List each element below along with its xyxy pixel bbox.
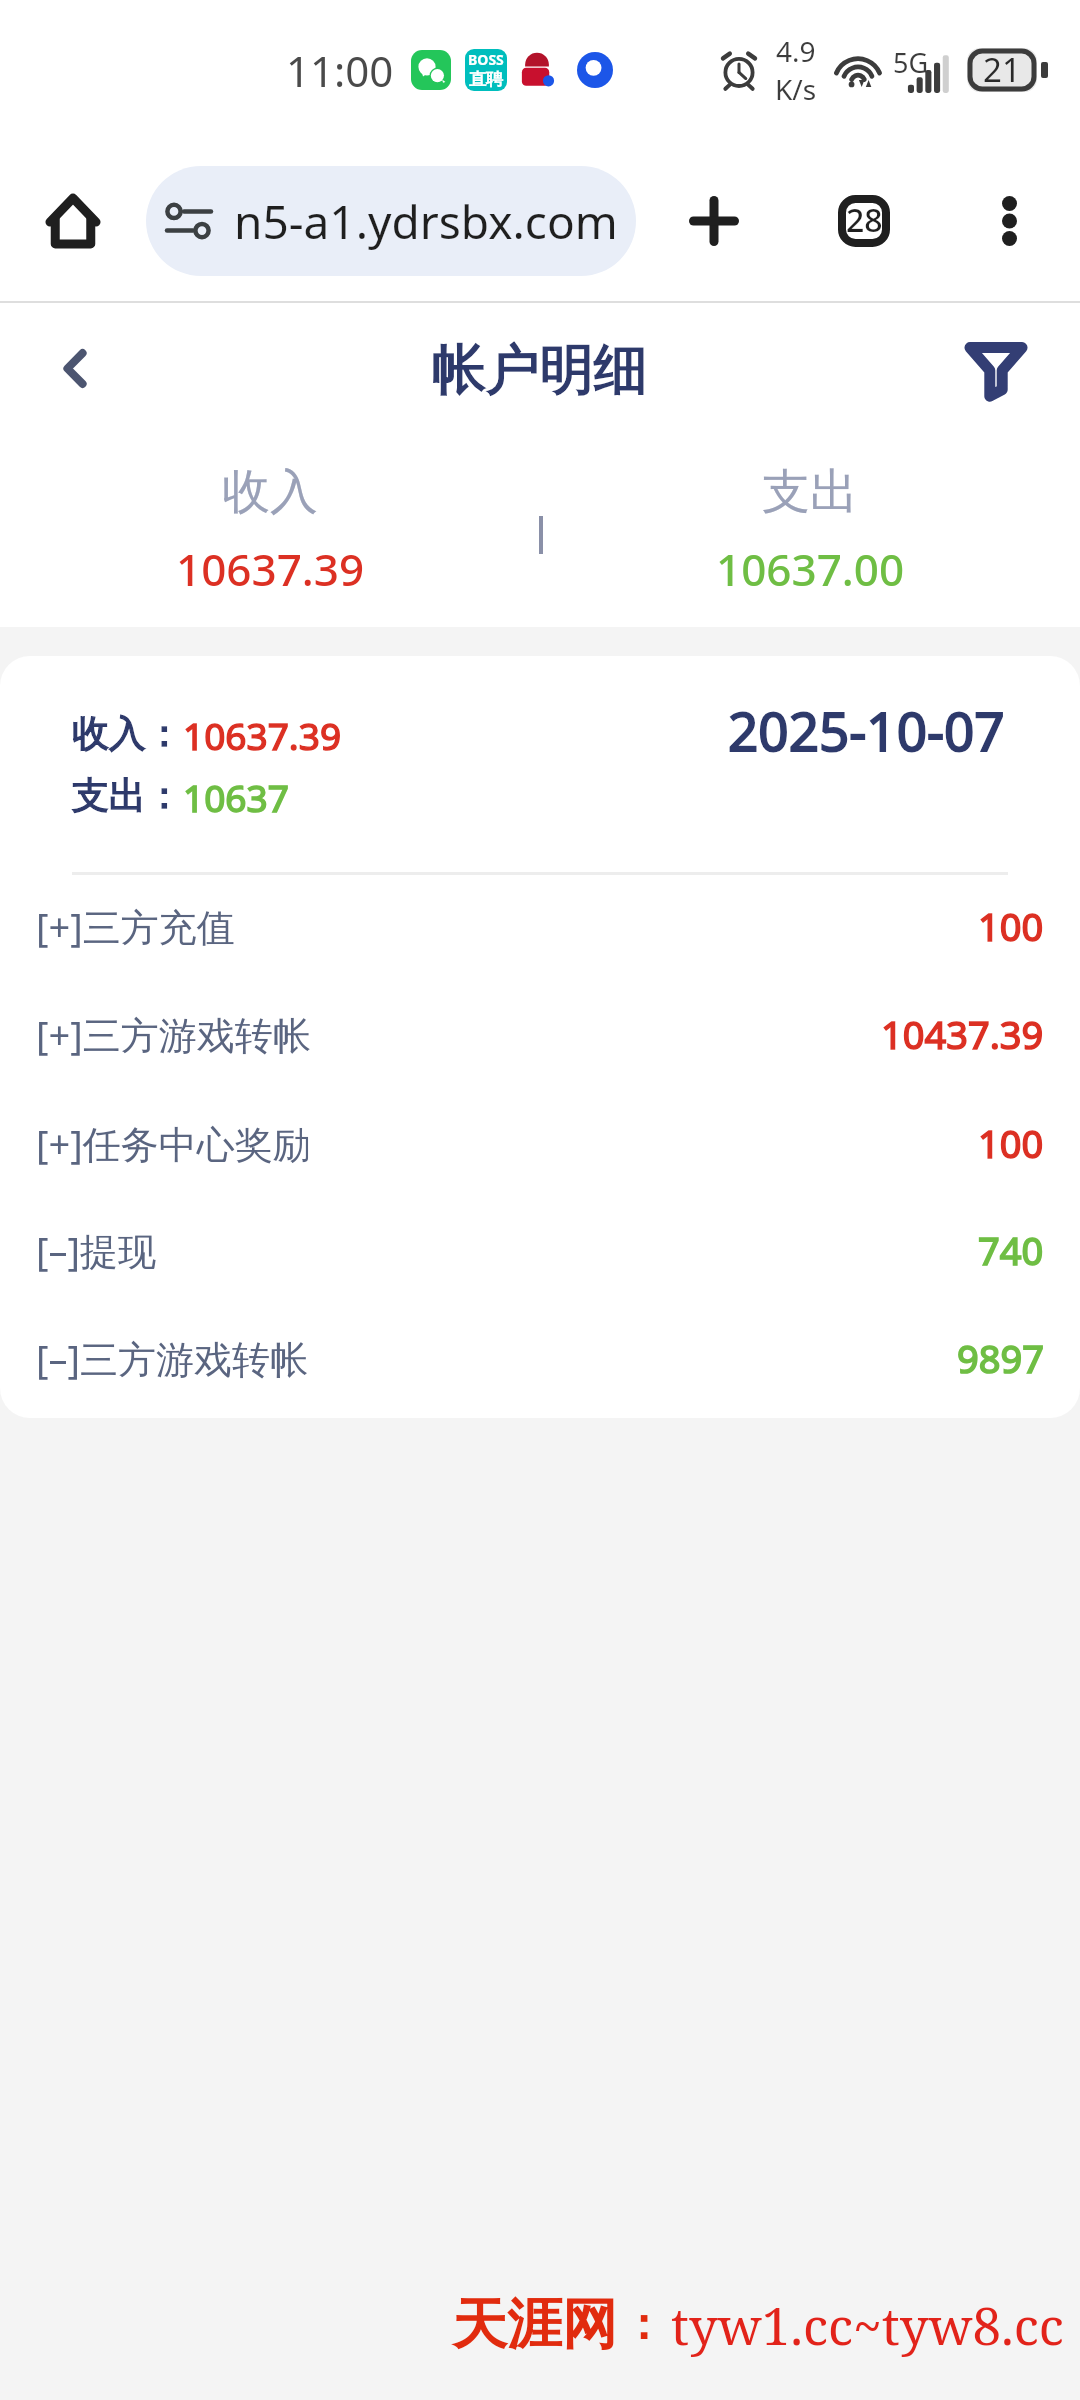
staticText: [+]任务中心奖励 bbox=[36, 1117, 311, 1169]
staticText: 9897 bbox=[957, 1332, 1044, 1384]
staticText: 100 bbox=[978, 1117, 1044, 1169]
staticText: 2025-10-07 bbox=[728, 694, 1005, 766]
button[interactable]: [+]三方游戏转帐 bbox=[0, 980, 1080, 1088]
button[interactable]: Home bbox=[30, 178, 116, 264]
staticText: 帐户明细 bbox=[432, 336, 648, 404]
button[interactable]: 支出 bbox=[540, 432, 1080, 627]
staticText: 帐户明细 bbox=[432, 336, 648, 404]
staticText: 11:00 bbox=[286, 42, 394, 99]
staticText: 10637 bbox=[183, 772, 289, 822]
button[interactable]: [+]任务中心奖励 bbox=[0, 1089, 1080, 1197]
staticText: ： bbox=[621, 2297, 665, 2352]
staticText: [–]三方游戏转帐 bbox=[36, 1332, 309, 1384]
staticText: 100 bbox=[978, 900, 1044, 952]
staticText: K/s bbox=[775, 70, 817, 108]
staticText: 天涯网 bbox=[452, 2290, 617, 2359]
button[interactable]: [–]三方游戏转帐 bbox=[0, 1304, 1080, 1412]
staticText: 收入 bbox=[222, 462, 318, 522]
staticText: 4.9 bbox=[776, 32, 816, 70]
staticText: 支出： bbox=[72, 772, 183, 819]
staticText: BOSS bbox=[468, 50, 504, 69]
staticText: 收入： bbox=[72, 710, 183, 757]
button[interactable]: Tabs bbox=[818, 175, 910, 267]
staticText: 740 bbox=[978, 1224, 1044, 1276]
staticText: 收入： bbox=[72, 710, 183, 757]
button[interactable]: More options bbox=[963, 175, 1055, 267]
staticText: 支出 bbox=[762, 462, 858, 522]
staticText: 100 bbox=[978, 900, 1044, 952]
staticText: 10637.39 bbox=[183, 710, 342, 760]
staticText: 9897 bbox=[957, 1332, 1044, 1384]
button[interactable]: n5-a1.ydrsbx.com bbox=[146, 166, 636, 276]
staticText: 21 bbox=[983, 47, 1021, 91]
staticText: 100 bbox=[978, 1117, 1044, 1169]
button[interactable]: 收入 bbox=[0, 432, 540, 627]
staticText: n5-a1.ydrsbx.com bbox=[234, 190, 618, 253]
button[interactable]: [–]提现 bbox=[0, 1196, 1080, 1304]
staticText: 10637.00 bbox=[716, 539, 905, 599]
staticText: 10637.39 bbox=[176, 539, 365, 599]
staticText: tyw1.cc~tyw8.cc bbox=[671, 2290, 1064, 2359]
staticText: [–]提现 bbox=[36, 1224, 157, 1276]
staticText: 10637.39 bbox=[183, 710, 342, 760]
staticText: 740 bbox=[978, 1224, 1044, 1276]
button[interactable]: [+]三方充值 bbox=[0, 872, 1080, 980]
staticText: 5G bbox=[893, 44, 929, 81]
button[interactable]: Back bbox=[30, 323, 120, 413]
button[interactable]: Filter bbox=[951, 323, 1041, 413]
staticText: 28 bbox=[846, 198, 883, 242]
staticText: 2025-10-07 bbox=[728, 694, 1005, 766]
staticText: 直聘 bbox=[469, 69, 503, 90]
staticText: 10437.39 bbox=[881, 1008, 1044, 1060]
staticText: 支出： bbox=[72, 772, 183, 819]
button[interactable]: New tab bbox=[668, 175, 760, 267]
staticText: 10637 bbox=[183, 772, 289, 822]
staticText: [+]三方充值 bbox=[36, 900, 235, 952]
staticText: [+]三方游戏转帐 bbox=[36, 1008, 311, 1060]
staticText: 10437.39 bbox=[881, 1008, 1044, 1060]
